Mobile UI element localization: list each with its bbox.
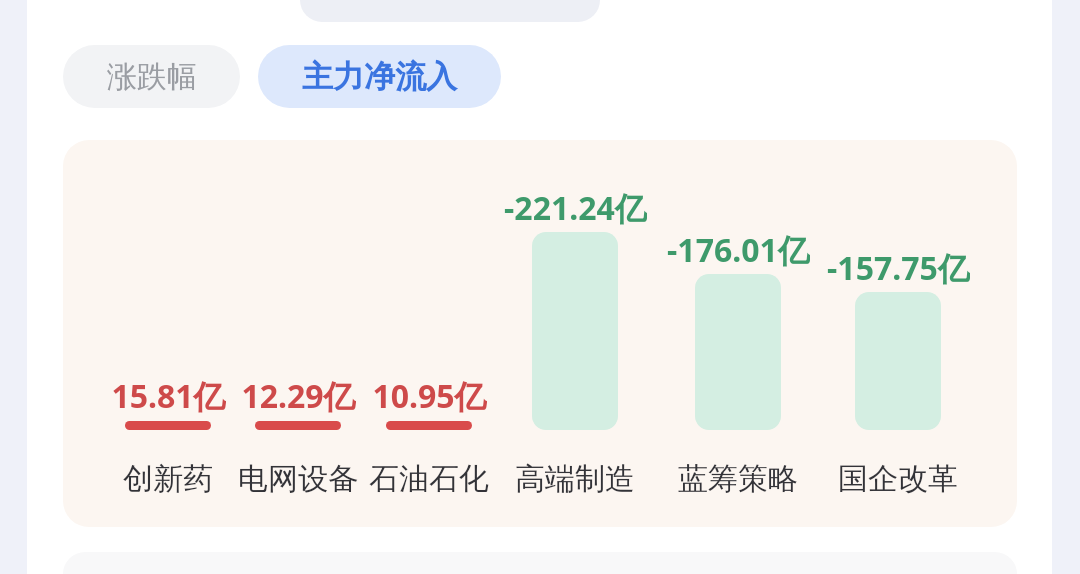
staticText: 蓝筹策略 — [678, 460, 798, 498]
button[interactable]: 涨跌幅 — [63, 45, 240, 108]
staticText: 高端制造 — [515, 460, 635, 498]
staticText: 涨跌幅 — [107, 58, 197, 96]
staticText: 电网设备 — [238, 460, 358, 498]
staticText: 10.95亿 — [372, 374, 487, 414]
staticText: 石油石化 — [369, 460, 489, 498]
staticText: 主力净流入 — [302, 57, 457, 96]
button[interactable] — [63, 140, 1017, 527]
staticText: -176.01亿 — [667, 228, 810, 268]
staticText: -157.75亿 — [827, 246, 970, 286]
button[interactable]: 主力净流入 — [258, 45, 501, 108]
staticText: 15.81亿 — [111, 374, 226, 414]
staticText: 创新药 — [123, 460, 213, 498]
staticText: 国企改革 — [838, 460, 958, 498]
staticText: 12.29亿 — [241, 374, 356, 414]
staticText: -221.24亿 — [504, 186, 647, 226]
